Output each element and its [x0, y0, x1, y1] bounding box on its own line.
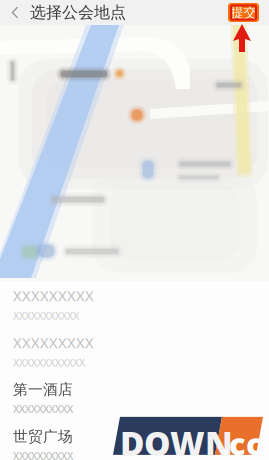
staticText: 选择公会地点 — [30, 3, 126, 22]
staticText: 第一酒店 — [13, 381, 73, 399]
staticText: XXXXXXXXX — [13, 286, 94, 305]
staticText: XXXXXXXXXX — [13, 402, 73, 416]
button[interactable]: XXXXXXXXX — [0, 328, 269, 375]
staticText: 世贸广场 — [13, 428, 73, 446]
staticText: XXXXXXXXX — [13, 333, 94, 352]
staticText: XXXXXXXXXX — [13, 449, 73, 460]
button[interactable]: XXXXXXXXX — [0, 281, 269, 328]
staticText: XXXXXXXXXXX — [13, 308, 79, 323]
staticText: XXXXXXXXXXXX — [13, 355, 85, 370]
button[interactable]: Back — [0, 0, 30, 25]
button[interactable]: 第一酒店 — [0, 375, 269, 422]
staticText: 提交 — [230, 4, 256, 21]
staticText: .cc — [220, 423, 263, 460]
button[interactable]: 世贸广场 — [0, 422, 269, 460]
staticText: DOWN — [120, 421, 233, 460]
button[interactable]: 提交 — [228, 3, 259, 22]
